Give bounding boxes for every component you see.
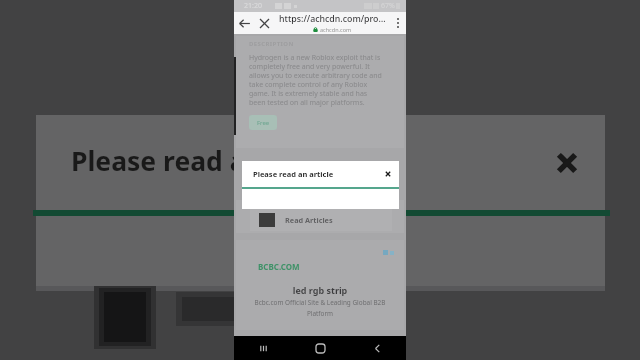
staticText: achcdn.com bbox=[320, 26, 352, 33]
staticText: BCBC.COM bbox=[258, 261, 300, 272]
button[interactable]: Free bbox=[249, 115, 277, 130]
button[interactable]: Recent apps bbox=[234, 336, 292, 360]
staticText: Read Articles bbox=[285, 215, 333, 225]
button[interactable]: Close bbox=[553, 149, 581, 177]
staticText: DESCRIPTION bbox=[249, 40, 294, 48]
staticText: led rgb strip bbox=[236, 284, 404, 296]
staticText: https://achcdn.com/pro… bbox=[279, 13, 386, 25]
button[interactable]: Home bbox=[292, 336, 349, 360]
button[interactable]: Close dialog bbox=[383, 169, 393, 179]
button[interactable]: Read Articles bbox=[250, 208, 392, 231]
staticText: Bcbc.com Official Site & Leading Global … bbox=[253, 298, 387, 318]
button[interactable]: Back bbox=[349, 336, 406, 360]
button[interactable]: More options bbox=[389, 12, 406, 34]
staticText: Please read an article bbox=[71, 143, 355, 179]
staticText: Please read an article bbox=[253, 169, 383, 179]
button[interactable]: Back bbox=[234, 12, 254, 34]
staticText: 67% bbox=[381, 1, 395, 11]
staticText: Hydrogen is a new Roblox exploit that is… bbox=[249, 53, 383, 107]
button[interactable]: Stop loading bbox=[254, 12, 274, 34]
staticText: 21:20 bbox=[244, 1, 262, 11]
staticText: Free bbox=[257, 119, 270, 127]
